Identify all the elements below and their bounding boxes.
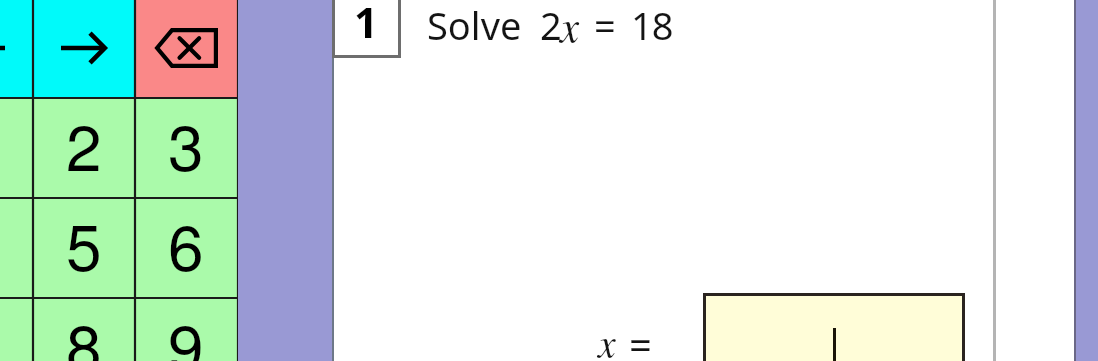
- button[interactable]: 5: [33, 198, 135, 298]
- staticText: 8: [66, 298, 102, 361]
- staticText: =: [629, 317, 652, 361]
- button[interactable]: 4: [0, 198, 33, 298]
- button[interactable]: 2: [33, 98, 135, 198]
- button[interactable]: Previous: [0, 0, 33, 98]
- other: Next: [61, 31, 107, 65]
- staticText: 18: [631, 0, 673, 51]
- button[interactable]: 9: [135, 298, 237, 361]
- staticText: 1: [354, 0, 379, 50]
- staticText: =: [594, 0, 616, 51]
- staticText: x: [560, 0, 580, 54]
- button[interactable]: 1: [0, 98, 33, 198]
- staticText: 9: [168, 298, 204, 361]
- staticText: 5: [66, 198, 102, 290]
- staticText: x: [598, 314, 616, 361]
- other: Backspace: [155, 28, 218, 68]
- button[interactable]: 3: [135, 98, 237, 198]
- button[interactable]: 6: [135, 198, 237, 298]
- staticText: 6: [168, 198, 204, 290]
- button[interactable]: 7: [0, 298, 33, 361]
- button[interactable]: Backspace: [135, 0, 237, 98]
- staticText: 2: [66, 98, 102, 190]
- staticText: Solve: [427, 0, 522, 51]
- button[interactable]: 8: [33, 298, 135, 361]
- staticText: 3: [168, 98, 204, 190]
- button[interactable]: Next: [33, 0, 135, 98]
- other: Previous: [0, 31, 5, 65]
- staticText: 2: [540, 0, 562, 51]
